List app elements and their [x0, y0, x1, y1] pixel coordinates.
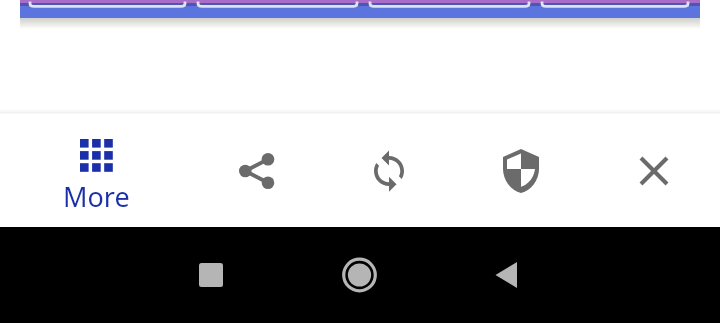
button[interactable]: Close — [613, 125, 695, 217]
button[interactable]: Recent apps — [151, 227, 271, 323]
staticText: More — [63, 178, 130, 215]
button[interactable]: Back — [446, 227, 566, 323]
button[interactable]: Home — [300, 227, 420, 323]
button[interactable]: Share — [216, 125, 298, 217]
button[interactable]: Refresh — [348, 125, 430, 217]
other: More — [80, 139, 112, 171]
button[interactable]: More — [36, 125, 156, 217]
button[interactable]: Security — [480, 125, 562, 217]
